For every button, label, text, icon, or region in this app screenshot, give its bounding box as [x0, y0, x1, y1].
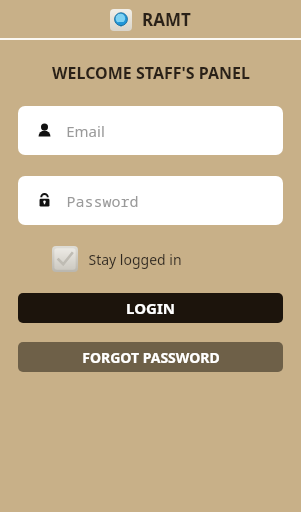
staticText: Password	[66, 191, 139, 211]
staticText: LOGIN	[126, 298, 175, 318]
staticText: Stay logged in	[88, 250, 182, 269]
button[interactable]: Email	[18, 106, 283, 155]
staticText: FORGOT PASSWORD	[82, 348, 220, 367]
staticText: RAMT	[142, 8, 191, 31]
button[interactable]: Stay logged in checkbox	[52, 246, 182, 272]
button[interactable]: FORGOT PASSWORD	[18, 342, 283, 372]
other: Stay logged in checkbox	[52, 246, 78, 272]
other: App logo	[110, 9, 132, 31]
button[interactable]: Password	[18, 176, 283, 225]
staticText: Email	[66, 121, 105, 141]
button[interactable]: LOGIN	[18, 293, 283, 323]
staticText: WELCOME STAFF'S PANEL	[52, 62, 250, 84]
